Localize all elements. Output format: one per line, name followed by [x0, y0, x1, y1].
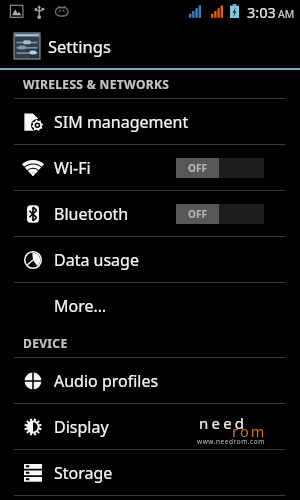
- button[interactable]: SIM management: [0, 99, 300, 145]
- button[interactable]: Storage: [0, 450, 300, 496]
- staticText: rom: [232, 421, 267, 441]
- button[interactable]: Settings: [0, 24, 300, 68]
- button[interactable]: Bluetooth: [0, 191, 300, 237]
- button[interactable]: Audio profiles: [0, 358, 300, 404]
- staticText: Settings: [48, 35, 111, 57]
- staticText: 3:03: [247, 2, 276, 22]
- staticText: Wi-Fi: [54, 157, 91, 179]
- staticText: AM: [278, 7, 295, 21]
- staticText: Audio profiles: [54, 370, 159, 392]
- staticText: SIM management: [54, 111, 189, 133]
- button[interactable]: Data usage: [0, 237, 300, 283]
- staticText: WIRELESS & NETWORKS: [23, 76, 170, 92]
- staticText: More…: [54, 295, 107, 317]
- staticText: Storage: [54, 462, 113, 484]
- staticText: Bluetooth: [54, 203, 129, 225]
- button[interactable]: Wi-Fi: [0, 145, 300, 191]
- button[interactable]: Toggle off: [176, 204, 264, 224]
- staticText: Data usage: [54, 249, 139, 271]
- staticText: OFF: [188, 161, 207, 175]
- staticText: Display: [54, 416, 109, 438]
- staticText: need: [199, 413, 248, 433]
- staticText: DEVICE: [23, 335, 68, 351]
- staticText: OFF: [188, 207, 207, 221]
- button[interactable]: Display: [0, 404, 300, 450]
- button[interactable]: Toggle off: [176, 158, 264, 178]
- button[interactable]: More…: [0, 283, 300, 329]
- staticText: www.needrom.com: [197, 437, 265, 446]
